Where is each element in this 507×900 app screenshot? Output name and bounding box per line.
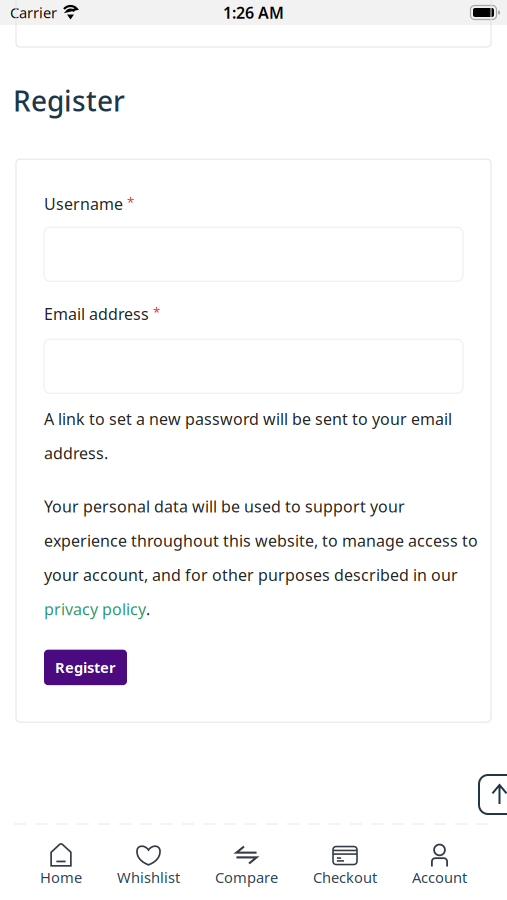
button[interactable]: Scroll to top [479, 775, 507, 814]
staticText: A link to set a new password will be sen… [44, 408, 452, 464]
staticText: Register [55, 658, 116, 677]
button[interactable]: Account [412, 843, 467, 887]
button[interactable]: Whishlist [117, 843, 180, 887]
staticText: * [127, 193, 134, 211]
staticText: Checkout [313, 867, 377, 887]
staticText: Your personal data will be used to suppo… [44, 496, 478, 620]
staticText: Carrier [10, 3, 57, 22]
staticText: Email address [44, 303, 149, 324]
staticText: * [153, 303, 160, 321]
staticText: Compare [215, 867, 278, 887]
button[interactable]: Home [40, 843, 82, 887]
button[interactable]: Compare [215, 843, 278, 887]
staticText: Home [40, 867, 82, 887]
button[interactable]: Checkout [313, 843, 377, 887]
staticText: Register [13, 82, 125, 119]
staticText: Whishlist [117, 867, 180, 887]
staticText: Account [412, 867, 467, 887]
button[interactable]: Register [44, 650, 127, 685]
staticText: 1:26 AM [223, 2, 284, 23]
staticText: Username [44, 193, 123, 214]
